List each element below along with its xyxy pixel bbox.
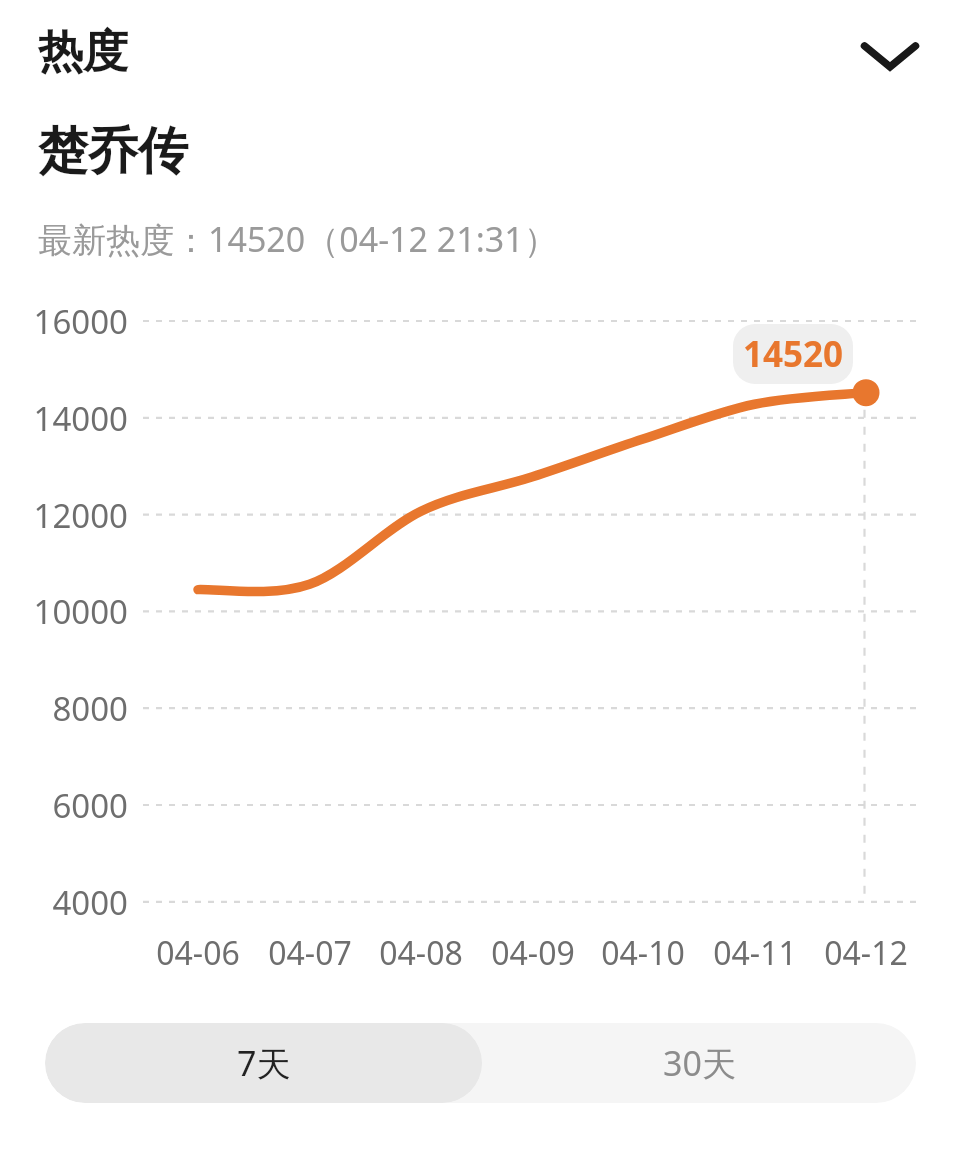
staticText: 04-06 <box>156 931 240 975</box>
button[interactable]: Collapse <box>840 12 940 100</box>
staticText: 楚乔传 <box>38 120 188 183</box>
staticText: 8000 <box>52 686 128 730</box>
staticText: 04-11 <box>713 931 797 975</box>
staticText: 30天 <box>663 1040 736 1086</box>
staticText: 10000 <box>33 589 128 633</box>
staticText: 04-08 <box>379 931 463 975</box>
button[interactable]: 30天 <box>482 1023 916 1103</box>
button[interactable]: 7天 <box>45 1023 482 1103</box>
staticText: 12000 <box>33 493 128 537</box>
staticText: 14520 <box>743 330 844 378</box>
staticText: 04-10 <box>601 931 685 975</box>
staticText: 7天 <box>237 1040 291 1086</box>
staticText: 04-09 <box>491 931 575 975</box>
staticText: 14000 <box>33 396 128 440</box>
staticText: 16000 <box>33 299 128 343</box>
staticText: 6000 <box>52 783 128 827</box>
staticText: 4000 <box>52 880 128 924</box>
staticText: 最新热度：14520（04-12 21:31） <box>38 216 558 262</box>
staticText: 04-12 <box>824 931 908 975</box>
staticText: 04-07 <box>268 931 352 975</box>
staticText: 热度 <box>38 24 128 81</box>
